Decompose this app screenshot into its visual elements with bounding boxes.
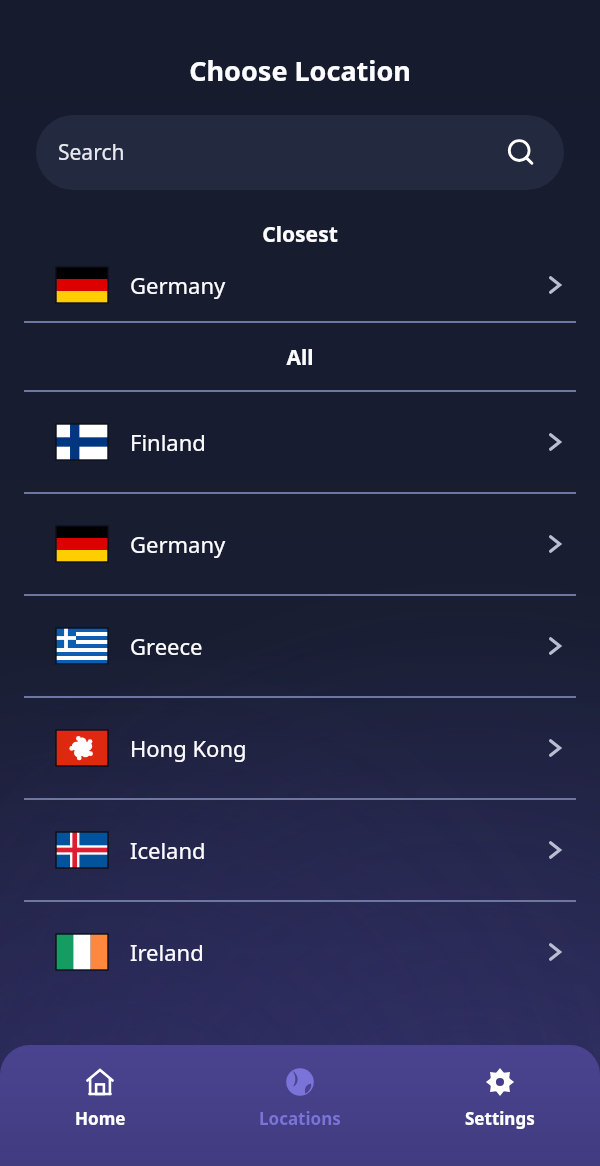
button[interactable]: Settings [400, 1045, 600, 1166]
button[interactable]: Germany [0, 494, 600, 594]
button[interactable]: Greece [0, 596, 600, 696]
staticText: Finland [130, 427, 542, 457]
button[interactable]: Locations [200, 1045, 400, 1166]
staticText: Search [58, 138, 125, 167]
staticText: Germany [130, 529, 542, 559]
staticText: Iceland [130, 835, 542, 865]
button[interactable]: Ireland [0, 902, 600, 1002]
staticText: Germany [130, 270, 542, 300]
staticText: Settings [465, 1107, 535, 1130]
button[interactable]: Hong Kong [0, 698, 600, 798]
button[interactable]: Search [36, 115, 564, 190]
staticText: All [0, 343, 600, 372]
staticText: Greece [130, 631, 542, 661]
button[interactable]: Home [0, 1045, 200, 1166]
button[interactable]: Iceland [0, 800, 600, 900]
button[interactable]: Finland [0, 392, 600, 492]
button[interactable]: Germany [0, 249, 600, 321]
staticText: Ireland [130, 937, 542, 967]
staticText: Locations [259, 1107, 341, 1130]
staticText: Choose Location [0, 52, 600, 89]
staticText: Home [75, 1107, 126, 1130]
staticText: Closest [0, 220, 600, 249]
staticText: Hong Kong [130, 733, 542, 763]
